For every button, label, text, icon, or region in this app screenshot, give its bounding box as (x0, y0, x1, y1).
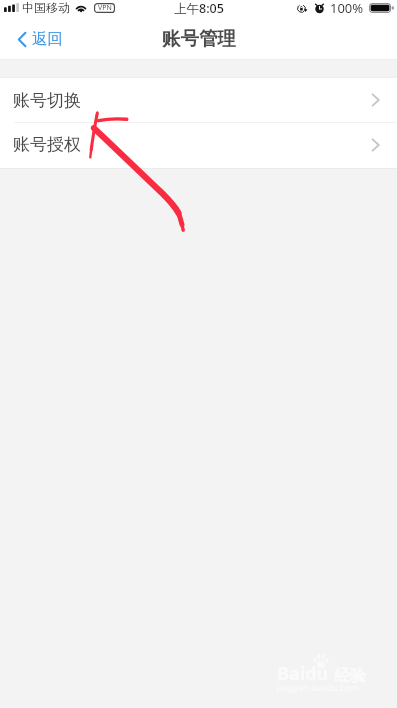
staticText: 账号切换 (13, 90, 81, 111)
staticText: VPN (98, 3, 112, 13)
staticText: 账号管理 (162, 27, 236, 50)
staticText: Baidu (277, 661, 329, 686)
staticText: 经验 (334, 666, 366, 686)
button[interactable]: 返回 (0, 24, 77, 54)
staticText: 返回 (32, 29, 63, 49)
staticText: 上午8:05 (174, 0, 224, 17)
staticText: 账号授权 (13, 134, 81, 155)
staticText: 100% (330, 0, 364, 17)
button[interactable]: 账号授权 (0, 123, 397, 168)
staticText: 中国移动 (22, 0, 70, 15)
button[interactable]: 账号切换 (0, 78, 397, 123)
